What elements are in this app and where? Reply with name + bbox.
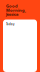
staticText: Morning,	[6, 7, 26, 13]
staticText: Today	[6, 22, 14, 26]
staticText: Good	[6, 3, 18, 9]
staticText: Jessica	[6, 12, 18, 17]
